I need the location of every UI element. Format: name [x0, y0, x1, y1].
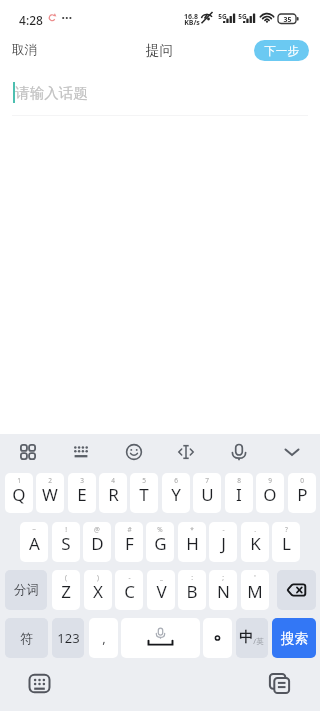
button[interactable]: ~ — [20, 522, 48, 562]
staticText: 123 — [57, 629, 80, 647]
staticText: * — [190, 525, 194, 534]
button[interactable]: 下一步 — [254, 40, 309, 61]
staticText: S — [61, 532, 71, 555]
staticText: 6 — [174, 476, 178, 485]
staticText: ? — [285, 525, 288, 534]
button[interactable]: 6 — [162, 473, 190, 513]
button[interactable]: Hide keyboard — [274, 434, 310, 470]
button[interactable]: 8 — [225, 473, 253, 513]
button[interactable]: 123 — [52, 618, 84, 658]
button[interactable]: 2 — [36, 473, 64, 513]
button[interactable]: 7 — [193, 473, 221, 513]
staticText: ! — [65, 525, 67, 534]
staticText: ) — [97, 573, 99, 582]
staticText: J — [221, 532, 226, 555]
staticText: 1 — [17, 476, 21, 485]
staticText: F — [125, 532, 134, 555]
button[interactable]: Voice input — [221, 434, 257, 470]
button[interactable]: Space — [121, 618, 200, 658]
button[interactable]: - — [209, 522, 237, 562]
staticText: Z — [61, 580, 71, 603]
button[interactable]: 5 — [130, 473, 158, 513]
button[interactable]: 9 — [256, 473, 284, 513]
button[interactable]: Period — [203, 618, 232, 658]
staticText: ' — [254, 573, 256, 582]
staticText: 16.8 — [184, 12, 198, 22]
button[interactable]: Keyboard — [63, 434, 99, 470]
staticText: M — [247, 580, 263, 603]
staticText: _ — [160, 573, 163, 582]
staticText: 3 — [80, 476, 84, 485]
staticText: - — [222, 525, 225, 534]
staticText: . — [254, 525, 256, 534]
staticText: P — [297, 483, 308, 506]
staticText: 搜索 — [281, 630, 308, 647]
staticText: 中 — [239, 629, 253, 647]
staticText: L — [282, 532, 291, 555]
button[interactable]: 分词 — [5, 570, 47, 610]
staticText: D — [91, 532, 104, 555]
staticText: C — [124, 580, 135, 603]
button[interactable]: # — [115, 522, 143, 562]
staticText: 取消 — [12, 42, 37, 58]
staticText: K — [250, 532, 261, 555]
staticText: 5 — [142, 476, 146, 485]
staticText: Y — [171, 483, 181, 506]
staticText: Q — [12, 483, 26, 506]
button[interactable]: 取消 — [6, 39, 43, 61]
staticText: 4:28 — [19, 12, 43, 28]
staticText: ~ — [32, 525, 36, 534]
staticText: ( — [65, 573, 67, 582]
staticText: /英 — [253, 636, 264, 646]
staticText: ; — [222, 573, 224, 582]
button[interactable]: ( — [52, 570, 80, 610]
staticText: I — [236, 483, 242, 506]
button[interactable]: - — [115, 570, 143, 610]
button[interactable]: : — [178, 570, 206, 610]
button[interactable]: . — [241, 522, 269, 562]
button[interactable]: 4 — [99, 473, 127, 513]
button[interactable]: ; — [209, 570, 237, 610]
button[interactable]: % — [146, 522, 174, 562]
button[interactable]: Switch keyboard — [24, 668, 55, 699]
button[interactable]: * — [178, 522, 206, 562]
staticText: # — [127, 525, 132, 534]
staticText: % — [157, 525, 163, 534]
staticText: H — [186, 532, 199, 555]
staticText: 分词 — [14, 582, 39, 598]
button[interactable]: ? — [272, 522, 300, 562]
staticText: W — [42, 483, 58, 506]
button[interactable]: 3 — [68, 473, 96, 513]
button[interactable]: ! — [52, 522, 80, 562]
staticText: G — [154, 532, 167, 555]
button[interactable]: _ — [147, 570, 175, 610]
staticText: B — [186, 580, 198, 603]
button[interactable]: 0 — [288, 473, 316, 513]
button[interactable]: ' — [241, 570, 269, 610]
button[interactable]: Move cursor — [168, 434, 204, 470]
staticText: R — [108, 483, 119, 506]
staticText: 2 — [48, 476, 52, 485]
staticText: 下一步 — [264, 44, 299, 58]
staticText: X — [93, 580, 103, 603]
staticText: : — [191, 573, 193, 582]
staticText: @ — [94, 525, 100, 534]
button[interactable]: ) — [84, 570, 112, 610]
button[interactable]: Delete — [277, 570, 316, 610]
button[interactable]: @ — [83, 522, 111, 562]
button[interactable]: 1 — [5, 473, 33, 513]
button[interactable]: 中 — [236, 618, 268, 658]
button[interactable]: Clipboard — [264, 668, 295, 699]
staticText: N — [217, 580, 230, 603]
staticText: 7 — [205, 476, 209, 485]
button[interactable]: Keyboard layouts — [10, 434, 46, 470]
button[interactable]: 符 — [5, 618, 48, 658]
button[interactable]: 搜索 — [272, 618, 316, 658]
staticText: 5G — [218, 12, 227, 21]
staticText: 4 — [111, 476, 115, 485]
staticText: 35 — [283, 15, 292, 25]
staticText: 0 — [300, 476, 304, 485]
staticText: O — [263, 483, 277, 506]
button[interactable]: , — [89, 618, 118, 658]
button[interactable]: Emoji — [116, 434, 152, 470]
